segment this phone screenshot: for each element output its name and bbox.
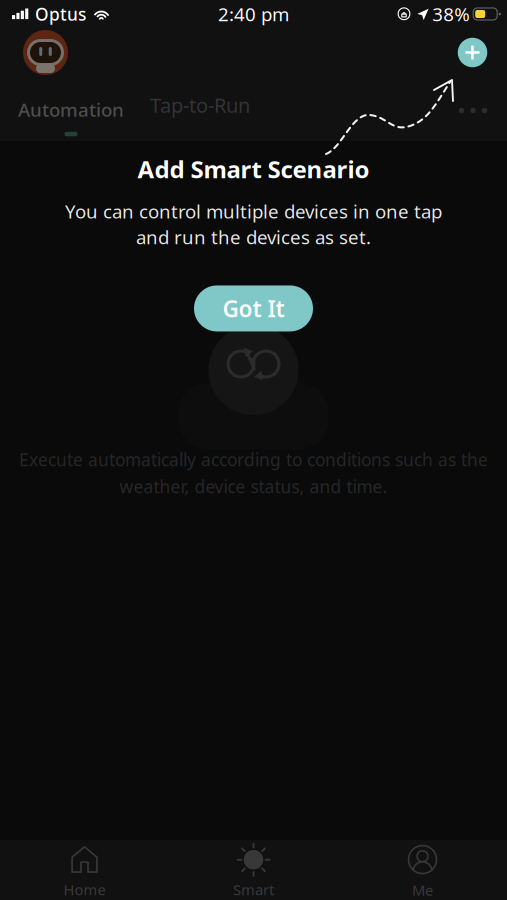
button[interactable]: Tap-to-Run <box>140 95 260 115</box>
staticText: Tap-to-Run <box>150 92 250 118</box>
button[interactable]: Automation <box>11 97 131 136</box>
staticText: Got It <box>222 293 284 323</box>
button[interactable]: Profile <box>19 26 71 78</box>
staticText: Optus <box>35 2 86 25</box>
staticText: weather, device status, and time. <box>119 475 387 498</box>
button[interactable]: Home <box>0 840 169 900</box>
button[interactable]: Add scenario <box>450 30 494 74</box>
staticText: 38% <box>432 2 470 26</box>
button[interactable]: Me <box>338 840 507 900</box>
staticText: and run the devices as set. <box>136 225 371 249</box>
staticText: Automation <box>18 97 124 122</box>
staticText: Add Smart Scenario <box>137 153 369 185</box>
staticText: Execute automatically according to condi… <box>19 448 488 471</box>
staticText: 2:40 pm <box>218 2 289 26</box>
staticText: Smart <box>233 880 274 899</box>
button[interactable]: More options <box>451 94 495 126</box>
button[interactable]: Got It <box>194 285 313 331</box>
staticText: Home <box>63 880 105 899</box>
button[interactable]: Smart <box>169 840 338 900</box>
staticText: Me <box>412 880 433 900</box>
staticText: You can control multiple devices in one … <box>65 199 442 224</box>
